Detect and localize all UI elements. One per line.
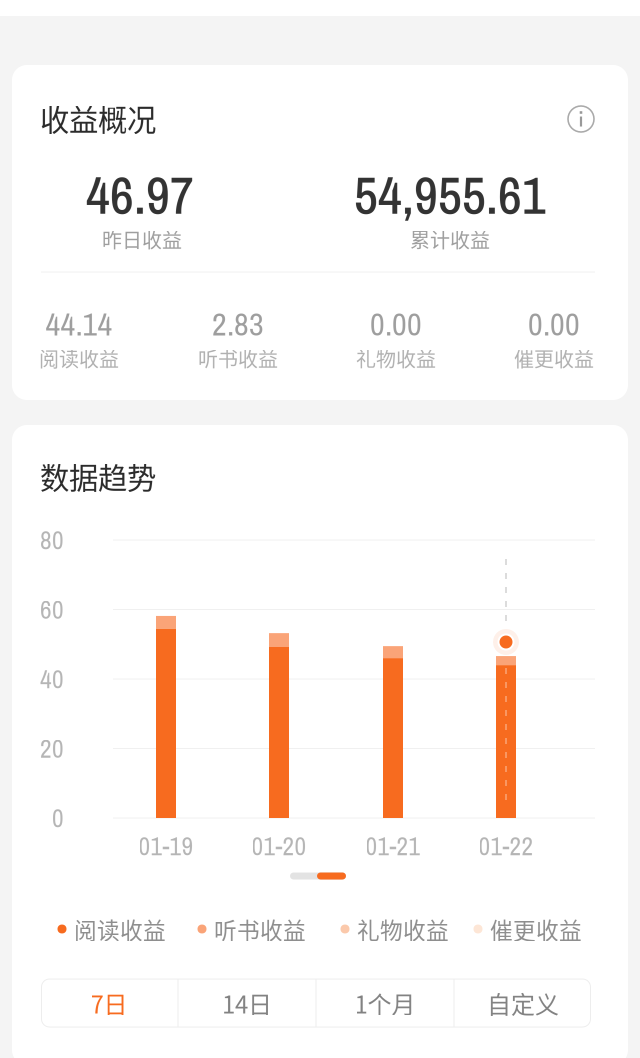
staticText: 昨日收益 [102,224,182,253]
staticText: 阅读收益 [39,343,119,372]
staticText: 阅读收益 [74,913,166,945]
staticText: 听书收益 [198,343,278,372]
staticText: 01-22 [478,829,533,863]
staticText: 44.14 [45,302,112,345]
staticText: 礼物收益 [356,343,436,372]
staticText: 0.00 [528,302,580,345]
button[interactable]: 收益说明 [560,98,602,140]
staticText: 2.83 [212,302,264,345]
staticText: 7日 [90,986,127,1020]
staticText: 0.00 [370,302,422,345]
staticText: 听书收益 [214,913,306,945]
staticText: 催更收益 [490,913,582,945]
staticText: 自定义 [487,986,559,1020]
button[interactable]: 自定义 [454,979,591,1027]
button[interactable]: 1个月 [316,979,453,1027]
staticText: 01-20 [251,829,306,863]
staticText: 54,955.61 [354,160,546,230]
staticText: 0 [52,801,64,835]
staticText: 礼物收益 [357,913,449,945]
staticText: 催更收益 [514,343,594,372]
button[interactable]: 14日 [178,979,315,1027]
button[interactable]: 7日 [40,979,177,1027]
staticText: 40 [40,662,64,696]
staticText: 累计收益 [410,224,490,253]
staticText: 14日 [222,986,272,1020]
staticText: 01-19 [138,829,193,863]
staticText: 1个月 [354,986,415,1020]
staticText: 数据趋势 [40,455,156,497]
staticText: 60 [40,592,64,626]
staticText: 01-21 [365,829,420,863]
staticText: 46.97 [86,160,194,230]
staticText: 收益概况 [40,97,156,139]
staticText: 20 [40,731,64,765]
staticText: 80 [40,523,64,557]
